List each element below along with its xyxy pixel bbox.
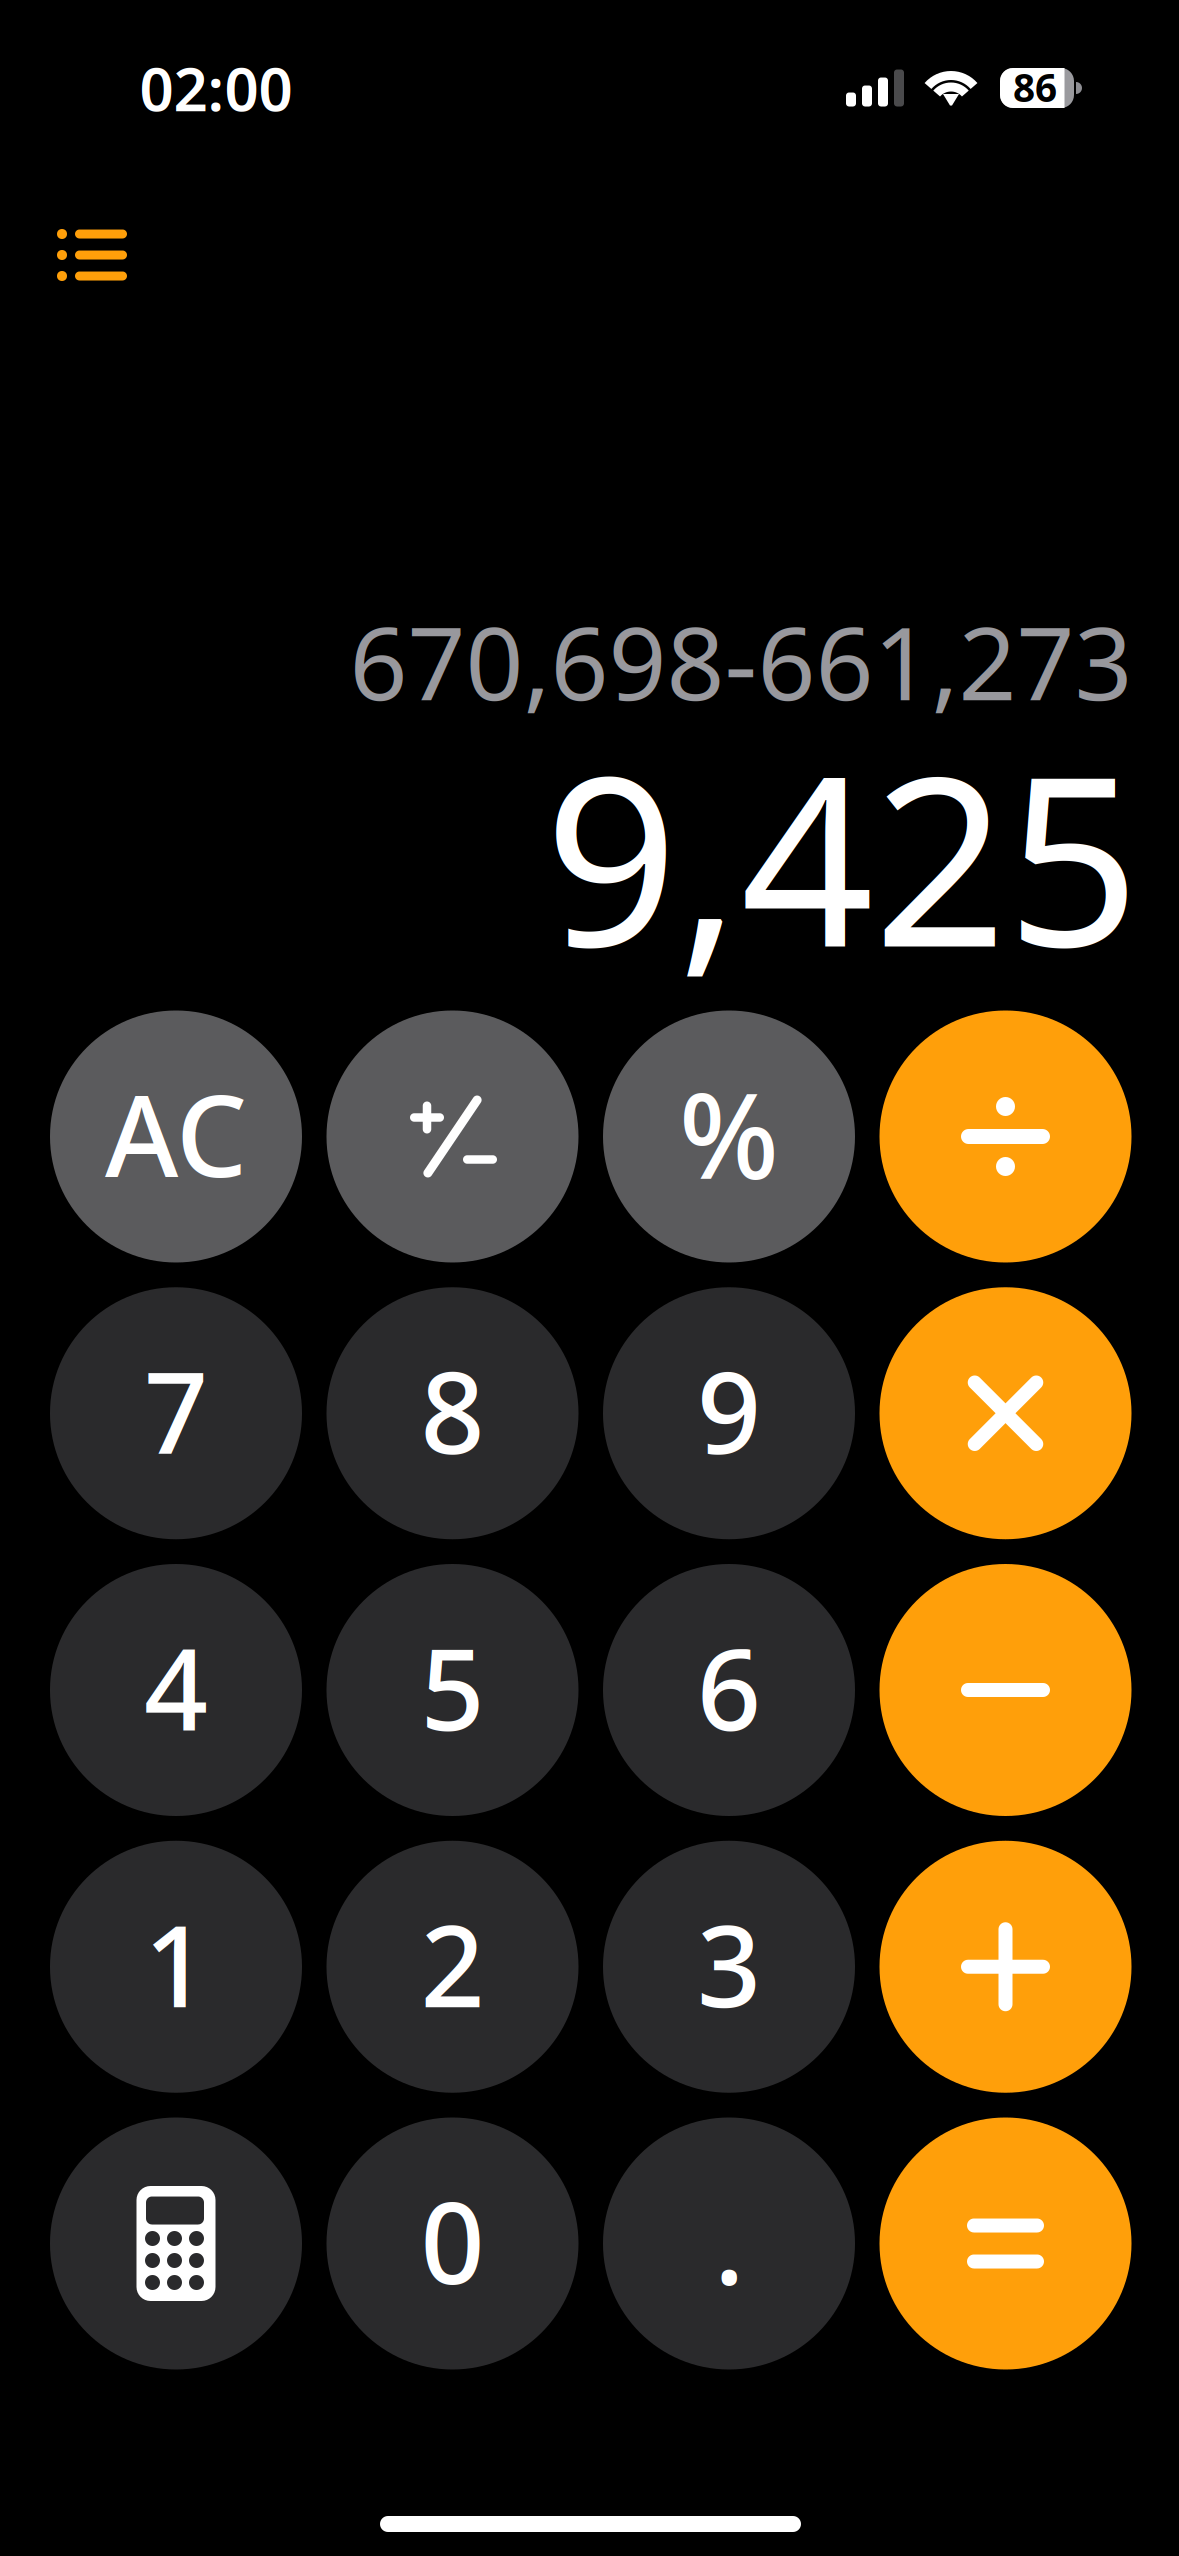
button[interactable]: Divide [879,1010,1131,1262]
button[interactable]: 3 [603,1841,855,2093]
button[interactable]: 6 [603,1564,855,1816]
button[interactable]: Plus minus [326,1010,578,1262]
button[interactable]: Multiply [879,1287,1131,1539]
staticText: 9 [697,1336,761,1485]
button[interactable]: Percent [603,1010,855,1262]
staticText: 5 [420,1613,484,1761]
staticText: 1 [144,1889,208,2038]
button[interactable]: 4 [50,1564,302,1816]
staticText: 670,698-661,273 [349,594,1132,728]
staticText: 3 [697,1889,761,2038]
button[interactable]: 0 [326,2117,578,2369]
staticText: 9,425 [544,701,1139,1011]
button[interactable]: All clear [50,1010,302,1262]
button[interactable]: History [39,209,145,301]
button[interactable]: Add [879,1841,1131,2093]
staticText: 0 [420,2166,484,2315]
button[interactable]: Decimal point [603,2117,855,2369]
staticText: 6 [697,1613,761,1761]
button[interactable]: Calculator [50,2117,302,2369]
button[interactable]: 5 [326,1564,578,1816]
button[interactable]: 8 [326,1287,578,1539]
staticText: 8 [420,1336,484,1485]
button[interactable]: 2 [326,1841,578,2093]
button[interactable]: 1 [50,1841,302,2093]
button[interactable]: Subtract [879,1564,1131,1816]
staticText: 7 [144,1336,208,1485]
button[interactable]: 9 [603,1287,855,1539]
staticText: . [714,2166,744,2315]
staticText: % [679,1056,779,1211]
staticText: 2 [420,1889,484,2038]
button[interactable]: 7 [50,1287,302,1539]
staticText: 02:00 [139,48,292,128]
staticText: 86 [1013,61,1057,113]
staticText: 4 [144,1613,208,1761]
staticText: AC [105,1059,247,1208]
button[interactable]: Equals [879,2117,1131,2369]
